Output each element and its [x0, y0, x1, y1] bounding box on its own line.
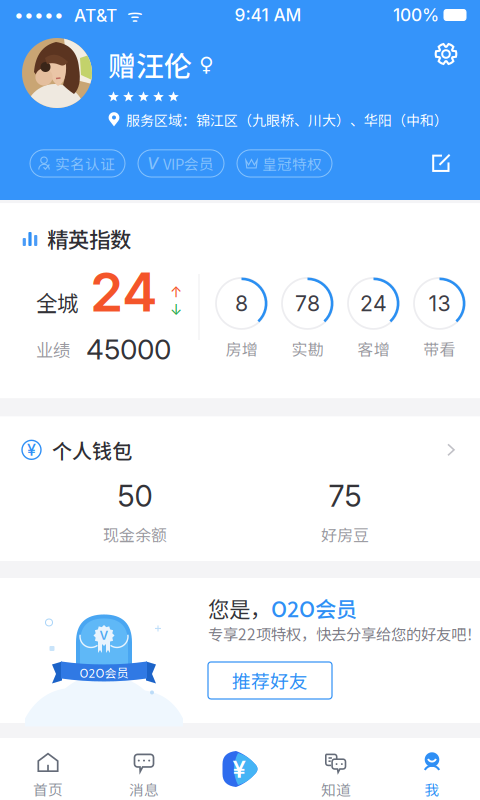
staticText: 好房豆	[321, 523, 369, 546]
staticText: ↑	[170, 283, 182, 301]
staticText: 您是，	[208, 592, 271, 623]
staticText: 全城	[36, 287, 78, 317]
button[interactable]: 我	[384, 738, 480, 800]
staticText: 实勘	[291, 337, 323, 360]
button[interactable]: 推荐好友	[208, 662, 332, 699]
staticText: 带看	[423, 337, 455, 360]
button[interactable]: 实名认证	[30, 150, 125, 177]
button[interactable]: Wallet	[192, 738, 288, 800]
staticText: 精英指数	[47, 223, 131, 254]
button[interactable]: ¥	[0, 416, 480, 561]
staticText: 13	[428, 290, 450, 316]
staticText: V	[99, 628, 108, 643]
staticText: V	[147, 154, 158, 173]
staticText: 78	[295, 290, 320, 316]
staticText: 个人钱包	[52, 435, 132, 464]
staticText: 实名认证	[55, 153, 115, 174]
staticText: 8	[235, 290, 248, 316]
staticText: 50	[117, 478, 152, 514]
staticText: 现金余额	[103, 523, 167, 546]
staticText: •••••	[14, 4, 64, 25]
staticText: ¥	[232, 754, 245, 783]
staticText: 75	[328, 478, 361, 514]
staticText: AT&T ᯤ	[64, 3, 143, 27]
staticText: ¥	[27, 440, 36, 460]
staticText: 消息	[129, 778, 159, 800]
staticText: O2O会员	[271, 592, 357, 623]
button[interactable]: V	[138, 150, 224, 177]
staticText: ♀	[199, 53, 214, 76]
button[interactable]: Settings	[434, 42, 458, 66]
staticText: 房增	[225, 337, 257, 360]
button[interactable]: 知道	[288, 738, 384, 800]
staticText: 赠汪伦	[108, 44, 192, 84]
staticText: 专享22项特权，快去分享给您的好友吧！	[208, 622, 480, 645]
staticText: 知道	[321, 778, 351, 800]
button[interactable]: 消息	[96, 738, 192, 800]
staticText: 我	[424, 778, 439, 800]
staticText: ↓	[170, 301, 182, 318]
button[interactable]: 皇冠特权	[237, 150, 332, 177]
staticText: 服务区域：锦江区（九眼桥、川大）、华阳（中和）	[126, 109, 448, 130]
staticText: 100%	[393, 4, 439, 25]
staticText: 客增	[357, 337, 389, 360]
staticText: 推荐好友	[232, 667, 308, 694]
staticText: 45000	[86, 332, 171, 366]
staticText: 9:41 AM	[234, 4, 301, 25]
staticText: 首页	[33, 778, 63, 800]
staticText: O2O会员	[79, 664, 128, 681]
staticText: 24	[90, 260, 158, 324]
staticText: VIP会员	[163, 153, 214, 174]
staticText: 皇冠特权	[262, 153, 322, 174]
staticText: 24	[360, 290, 387, 316]
button[interactable]: Edit profile	[430, 152, 452, 174]
staticText: 业绩	[36, 337, 70, 362]
button[interactable]: 首页	[0, 738, 96, 800]
